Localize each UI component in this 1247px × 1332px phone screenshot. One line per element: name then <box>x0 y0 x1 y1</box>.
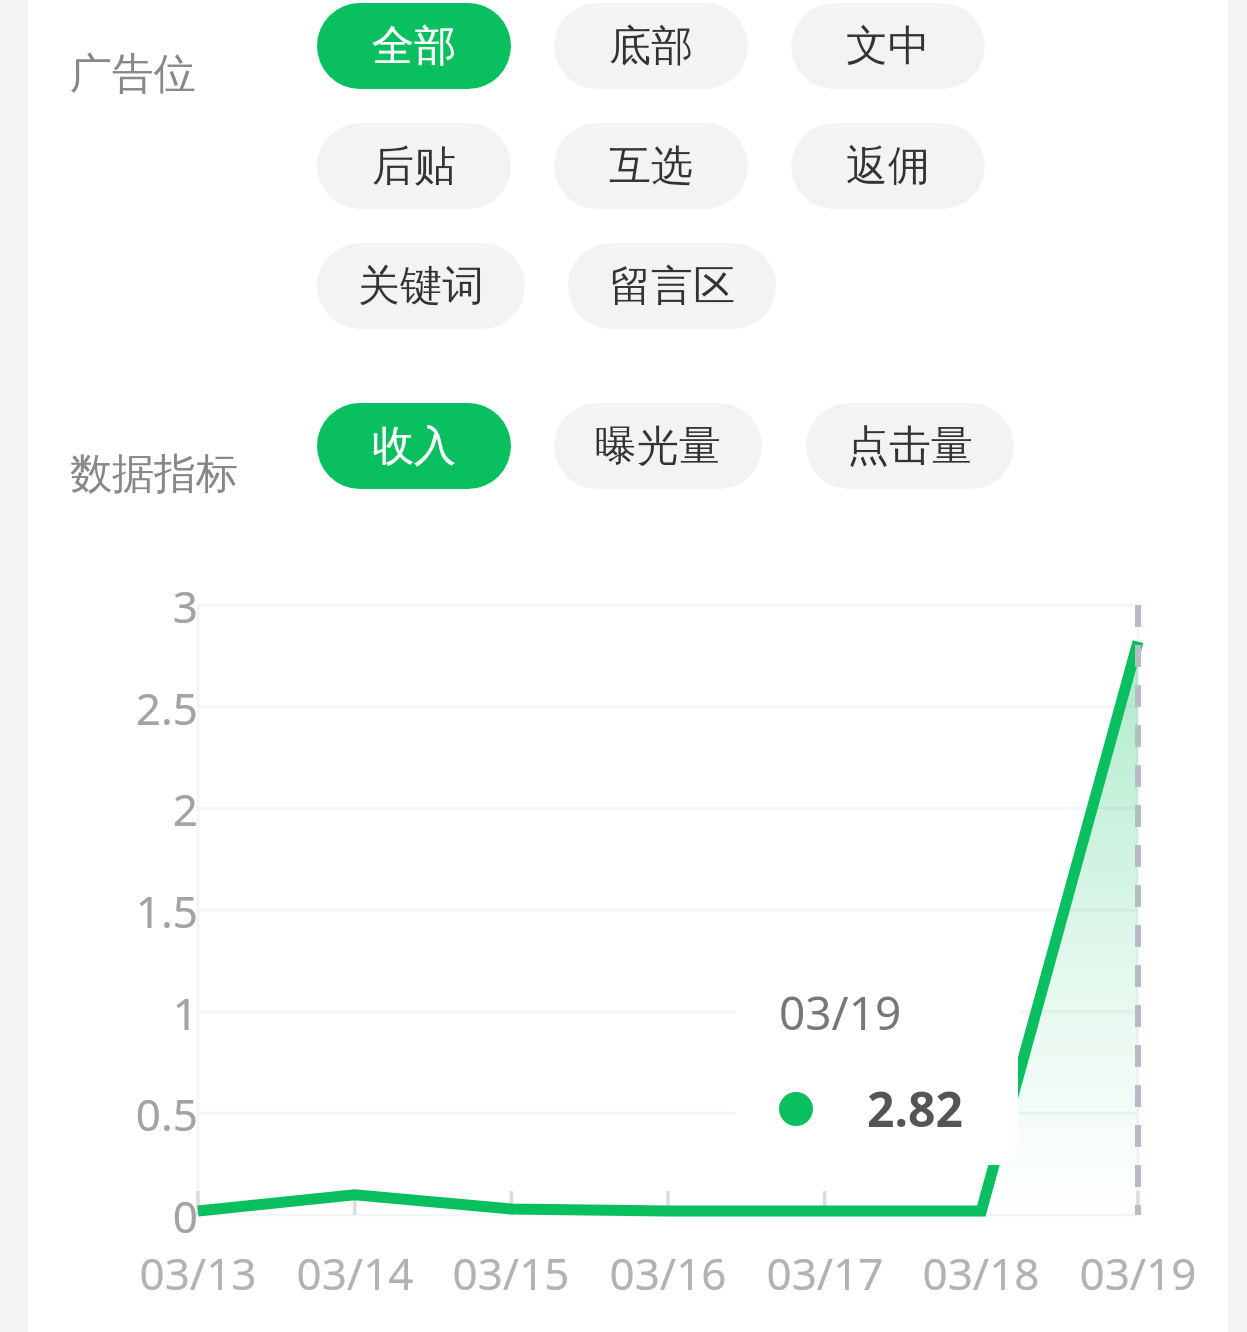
staticText: 2.5 <box>135 678 198 738</box>
staticText: 后贴 <box>372 140 456 193</box>
staticText: 03/14 <box>296 1243 414 1303</box>
staticText: 1 <box>172 983 198 1043</box>
button[interactable]: 文中 <box>791 3 985 89</box>
staticText: 文中 <box>846 20 930 73</box>
staticText: 03/16 <box>609 1243 727 1303</box>
button[interactable]: 后贴 <box>317 123 511 209</box>
staticText: 03/13 <box>139 1243 257 1303</box>
staticText: 广告位 <box>70 48 196 101</box>
staticText: 3 <box>172 576 198 636</box>
button[interactable]: 底部 <box>554 3 748 89</box>
button[interactable]: 关键词 <box>317 243 525 329</box>
button[interactable]: 03/19 收入 2.82 <box>735 945 1018 1165</box>
staticText: 互选 <box>609 140 693 193</box>
staticText: 03/19 <box>779 981 902 1044</box>
button[interactable]: 点击量 <box>806 403 1014 489</box>
button[interactable]: 收入 <box>317 403 511 489</box>
button[interactable]: 全部 <box>317 3 511 89</box>
button[interactable]: 互选 <box>554 123 748 209</box>
button[interactable]: 留言区 <box>568 243 776 329</box>
staticText: 2 <box>172 779 198 839</box>
staticText: 曝光量 <box>595 420 721 473</box>
staticText: 留言区 <box>609 260 735 313</box>
staticText: 底部 <box>609 20 693 73</box>
staticText: 03/15 <box>452 1243 570 1303</box>
staticText: 03/19 <box>1079 1243 1197 1303</box>
staticText: 2.82 <box>867 1076 963 1141</box>
staticText: 收入 <box>372 420 456 473</box>
staticText: 0 <box>172 1186 198 1246</box>
staticText: 数据指标 <box>70 448 238 501</box>
button[interactable]: 曝光量 <box>554 403 762 489</box>
staticText: 03/17 <box>766 1243 884 1303</box>
staticText: 全部 <box>372 20 456 73</box>
staticText: 关键词 <box>358 260 484 313</box>
button[interactable]: 返佣 <box>791 123 985 209</box>
staticText: 03/18 <box>922 1243 1040 1303</box>
staticText: 返佣 <box>846 140 930 193</box>
staticText: 1.5 <box>135 881 198 941</box>
staticText: 0.5 <box>135 1084 198 1144</box>
staticText: 点击量 <box>847 420 973 473</box>
